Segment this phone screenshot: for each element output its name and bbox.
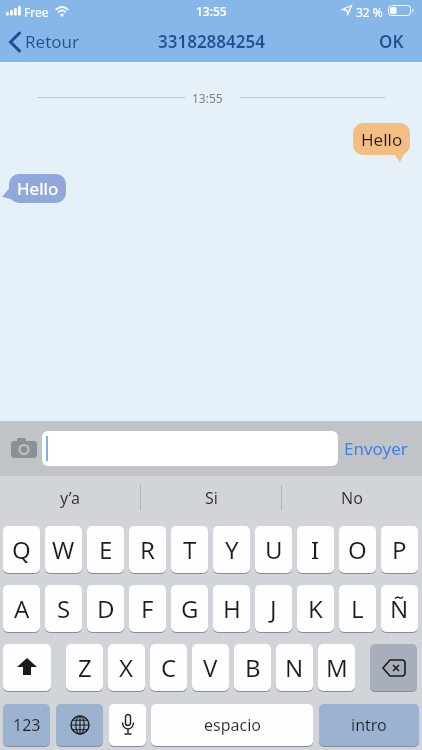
button[interactable]: Ñ: [381, 585, 418, 633]
button[interactable]: Q: [3, 526, 40, 574]
staticText: N: [285, 651, 304, 684]
staticText: 13:55: [192, 90, 223, 106]
button[interactable]: J: [255, 585, 292, 633]
button[interactable]: B: [234, 644, 271, 692]
button[interactable]: K: [297, 585, 334, 633]
button[interactable]: y’a: [0, 476, 140, 519]
button[interactable]: C: [150, 644, 187, 692]
staticText: Ñ: [390, 592, 409, 625]
button[interactable]: [3, 644, 51, 692]
staticText: 13:55: [196, 3, 227, 19]
button[interactable]: intro: [319, 704, 419, 747]
button[interactable]: A: [3, 585, 40, 633]
button[interactable]: No: [282, 476, 422, 519]
staticText: G: [181, 592, 199, 625]
staticText: 123: [13, 714, 41, 736]
staticText: K: [308, 592, 323, 625]
staticText: B: [245, 651, 261, 684]
staticText: C: [161, 651, 177, 684]
staticText: L: [351, 592, 364, 625]
button[interactable]: M: [318, 644, 355, 692]
button[interactable]: V: [192, 644, 229, 692]
staticText: Z: [78, 651, 92, 684]
staticText: No: [341, 487, 363, 509]
button[interactable]: U: [255, 526, 292, 574]
staticText: E: [99, 533, 113, 566]
button[interactable]: Si: [141, 476, 281, 519]
button[interactable]: [11, 438, 38, 458]
staticText: A: [14, 592, 30, 625]
staticText: U: [265, 533, 283, 566]
button[interactable]: Y: [213, 526, 250, 574]
button[interactable]: W: [45, 526, 82, 574]
staticText: y’a: [60, 487, 80, 509]
button[interactable]: Envoyer: [344, 437, 408, 460]
button[interactable]: L: [339, 585, 376, 633]
staticText: V: [203, 651, 218, 684]
button[interactable]: H: [213, 585, 250, 633]
staticText: D: [97, 592, 115, 625]
button[interactable]: R: [129, 526, 166, 574]
button[interactable]: Retour: [9, 30, 80, 53]
staticText: Si: [205, 487, 218, 509]
button[interactable]: [370, 644, 417, 692]
button[interactable]: T: [171, 526, 208, 574]
staticText: O: [348, 533, 367, 566]
button[interactable]: Hello: [353, 123, 410, 155]
button[interactable]: D: [87, 585, 124, 633]
staticText: Hello: [361, 128, 403, 151]
staticText: 33182884254: [158, 30, 265, 53]
staticText: 32 %: [356, 4, 383, 20]
staticText: T: [183, 533, 197, 566]
button[interactable]: O: [339, 526, 376, 574]
staticText: I: [311, 533, 320, 566]
staticText: X: [119, 651, 134, 684]
staticText: W: [52, 533, 75, 566]
staticText: Hello: [17, 177, 59, 200]
staticText: M: [326, 651, 348, 684]
button[interactable]: N: [276, 644, 313, 692]
button[interactable]: F: [129, 585, 166, 633]
button[interactable]: P: [381, 526, 418, 574]
button[interactable]: [42, 431, 338, 466]
staticText: Retour: [25, 30, 80, 53]
button[interactable]: [56, 704, 103, 747]
button[interactable]: [109, 704, 146, 747]
button[interactable]: 123: [3, 704, 50, 747]
staticText: F: [141, 592, 154, 625]
button[interactable]: Z: [66, 644, 103, 692]
staticText: R: [140, 533, 155, 566]
staticText: H: [223, 592, 241, 625]
staticText: J: [270, 592, 277, 625]
button[interactable]: OK: [379, 30, 404, 53]
staticText: P: [392, 533, 407, 566]
button[interactable]: E: [87, 526, 124, 574]
button[interactable]: S: [45, 585, 82, 633]
button[interactable]: G: [171, 585, 208, 633]
button[interactable]: X: [108, 644, 145, 692]
staticText: S: [57, 592, 71, 625]
button[interactable]: espacio: [151, 704, 313, 747]
staticText: intro: [351, 714, 387, 736]
staticText: Free: [24, 4, 49, 20]
button[interactable]: Hello: [9, 174, 66, 203]
staticText: Y: [225, 533, 239, 566]
button[interactable]: I: [297, 526, 334, 574]
staticText: Q: [12, 533, 31, 566]
staticText: espacio: [204, 714, 261, 736]
